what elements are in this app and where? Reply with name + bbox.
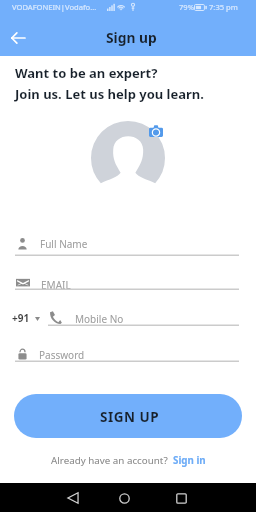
button[interactable]: Password xyxy=(0,341,256,363)
staticText: Password xyxy=(39,348,85,362)
button[interactable]: Change profile photo xyxy=(149,125,163,137)
button[interactable]: Full Name xyxy=(0,230,256,257)
staticText: Mobile No xyxy=(75,312,124,326)
button[interactable]: EMAIL xyxy=(0,271,256,291)
staticText: VODAFONEIN|Vodafo... xyxy=(12,2,97,12)
button[interactable]: Recent apps xyxy=(169,486,193,510)
staticText: Already have an account? xyxy=(51,454,173,467)
button[interactable]: Back xyxy=(5,25,30,50)
staticText: 79% xyxy=(179,2,194,12)
staticText: EMAIL xyxy=(41,278,71,292)
staticText: Full Name xyxy=(40,237,88,251)
button[interactable]: Back xyxy=(61,486,85,510)
staticText: Sign up xyxy=(106,28,157,47)
button[interactable]: SIGN UP xyxy=(14,394,242,438)
staticText: Join us. Let us help you learn. xyxy=(15,85,204,103)
staticText: Want to be an expert? xyxy=(15,64,158,82)
button[interactable]: Sign in xyxy=(173,454,206,467)
staticText: 7:35 pm xyxy=(209,2,238,12)
button[interactable]: Home xyxy=(112,486,136,510)
staticText: +91 xyxy=(12,311,30,325)
button[interactable]: +91 xyxy=(0,306,256,330)
staticText: SIGN UP xyxy=(100,408,160,426)
